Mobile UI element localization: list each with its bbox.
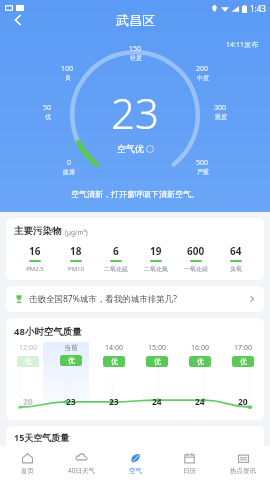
staticText: 100 [61, 64, 74, 74]
staticText: 健康 [63, 168, 75, 176]
button[interactable]: Back [4, 6, 32, 34]
staticText: 16 [29, 244, 41, 258]
staticText: 优 [45, 113, 51, 121]
staticText: 空气 [129, 467, 142, 475]
staticText: 0 [67, 158, 72, 168]
staticText: 24 [195, 396, 205, 408]
staticText: 轻度 [130, 54, 142, 62]
staticText: 6 [113, 244, 119, 258]
button[interactable]: 40日天气 [54, 446, 108, 480]
staticText: 19 [150, 244, 162, 258]
staticText: 17:00 [234, 343, 252, 353]
staticText: 23 [109, 396, 119, 408]
staticText: 空气清新，打开窗呼吸下清新空气。 [71, 189, 199, 199]
staticText: 23 [111, 84, 159, 141]
staticText: 首页 [21, 467, 34, 475]
staticText: 优 [68, 356, 75, 365]
staticText: 击败全国87%城市，看我的城市排第几? [29, 293, 177, 305]
staticText: 64 [230, 244, 242, 258]
staticText: 20 [238, 396, 248, 408]
staticText: 16:00 [191, 343, 209, 353]
staticText: 24 [152, 396, 162, 408]
staticText: 日历 [183, 467, 196, 475]
staticText: 15天空气质量 [14, 431, 70, 443]
staticText: 一氧化碳 [184, 265, 208, 273]
button[interactable]: 空气 [108, 446, 162, 480]
staticText: 重度 [215, 113, 227, 121]
staticText: 200 [196, 64, 209, 74]
staticText: 二氧化氮 [144, 265, 168, 273]
staticText: 20 [23, 396, 33, 408]
staticText: 150 [129, 44, 142, 54]
staticText: 二氧化硫 [104, 265, 128, 273]
staticText: 500 [196, 158, 209, 168]
staticText: 12:00 [19, 343, 37, 353]
staticText: 300 [214, 103, 227, 113]
staticText: 当前 [64, 343, 78, 352]
staticText: 14:11发布 [226, 40, 258, 50]
button[interactable]: 首页 [0, 446, 54, 480]
staticText: PM2.5 [26, 265, 44, 273]
staticText: 15:00 [148, 343, 166, 353]
staticText: 23 [66, 396, 76, 408]
staticText: 主要污染物 [14, 225, 62, 237]
staticText: 优 [240, 357, 247, 366]
staticText: 中度 [197, 74, 209, 82]
staticText: 600 [187, 244, 205, 258]
staticText: 热点资讯 [230, 467, 256, 475]
staticText: (μg/m³) [65, 228, 88, 237]
staticText: 18 [70, 244, 82, 258]
button[interactable]: 空气优 [117, 143, 154, 154]
staticText: 优 [197, 357, 204, 366]
button[interactable]: 日历 [162, 446, 216, 480]
staticText: 良 [65, 74, 71, 82]
staticText: 48小时空气质量 [14, 325, 82, 338]
button[interactable]: 热点资讯 [216, 446, 270, 480]
staticText: 优 [111, 357, 118, 366]
staticText: PM10 [68, 265, 84, 273]
staticText: 臭氧 [230, 265, 242, 273]
staticText: 武昌区 [116, 12, 155, 28]
staticText: 空气优 [117, 143, 144, 154]
staticText: 40日天气 [68, 466, 95, 475]
staticText: 14:00 [105, 343, 123, 353]
staticText: 1:43 [250, 3, 266, 14]
staticText: 优 [25, 357, 32, 366]
staticText: 50 [43, 103, 52, 113]
button[interactable]: 击败全国87%城市，看我的城市排第几? [6, 286, 264, 312]
staticText: 优 [154, 357, 161, 366]
staticText: 严重 [197, 168, 209, 176]
